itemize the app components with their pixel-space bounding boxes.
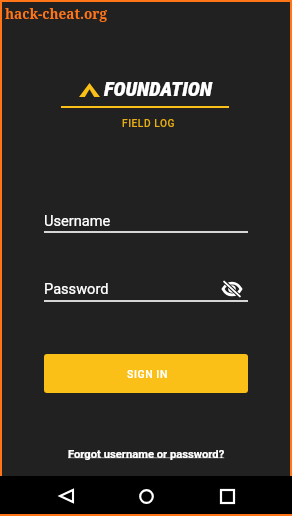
- button[interactable]: Show password: [219, 276, 245, 302]
- button[interactable]: [68, 445, 226, 463]
- button[interactable]: Home: [130, 480, 162, 512]
- button[interactable]: [44, 354, 248, 393]
- button[interactable]: Back: [50, 480, 82, 512]
- staticText: hack-cheat.org: [5, 4, 107, 23]
- button[interactable]: Recent apps: [211, 480, 243, 512]
